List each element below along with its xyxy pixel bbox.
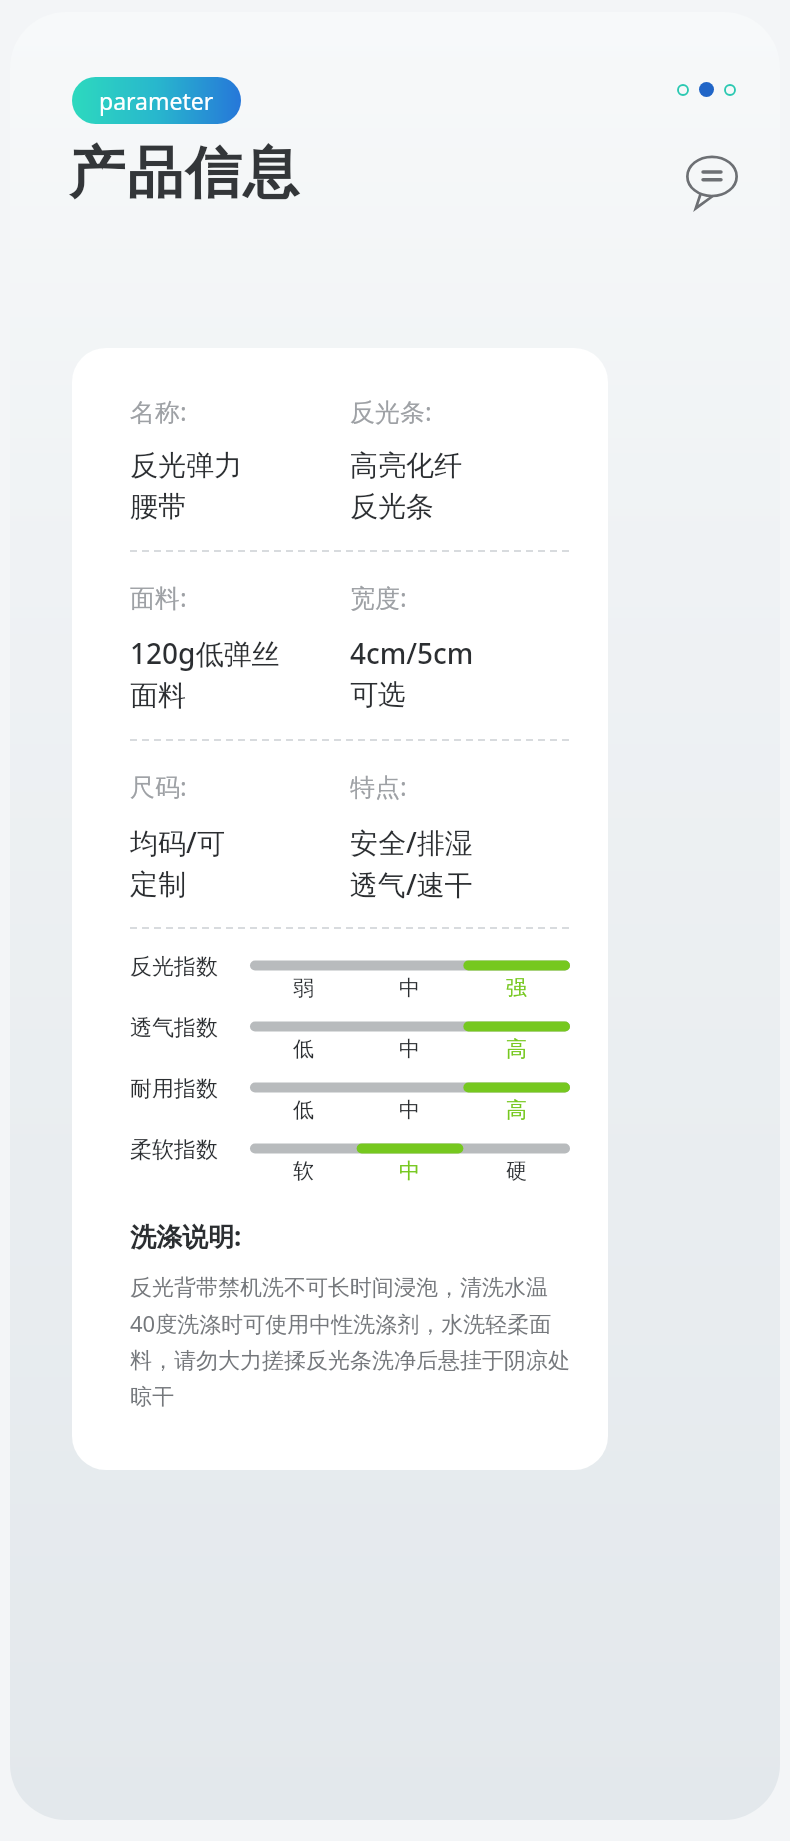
staticText: 120g低弹丝 面料 [130, 634, 280, 713]
staticText: 4cm/5cm 可选 [350, 634, 474, 712]
staticText: 中 [399, 1036, 420, 1062]
staticText: 反光弹力 腰带 [130, 448, 242, 524]
staticText: 尺码: [130, 769, 187, 803]
staticText: 中 [399, 1158, 420, 1184]
staticText: 中 [399, 1097, 420, 1123]
staticText: 耐用指数 [130, 1075, 218, 1103]
button[interactable]: Page indicator [677, 82, 736, 97]
button[interactable]: 反光指数 [130, 953, 570, 1001]
staticText: 高亮化纤 反光条 [350, 448, 462, 524]
staticText: parameter [99, 85, 214, 116]
staticText: 中 [399, 975, 420, 1001]
button[interactable]: 柔软指数 [130, 1136, 570, 1184]
staticText: 透气指数 [130, 1014, 218, 1042]
staticText: 弱 [293, 975, 314, 1001]
staticText: 反光条: [350, 394, 432, 428]
staticText: 安全/排湿 透气/速干 [350, 823, 473, 903]
staticText: 强 [506, 975, 527, 1001]
staticText: 反光背带禁机洗不可长时间浸泡，清洗水温40度洗涤时可使用中性洗涤剂，水洗轻柔面料… [130, 1274, 570, 1410]
button[interactable]: 耐用指数 [130, 1075, 570, 1123]
staticText: 特点: [350, 769, 407, 803]
staticText: 柔软指数 [130, 1136, 218, 1164]
staticText: 名称: [130, 394, 187, 428]
staticText: 硬 [506, 1158, 527, 1184]
button[interactable]: Comments [684, 154, 740, 210]
staticText: 均码/可 定制 [130, 823, 225, 902]
button[interactable]: 透气指数 [130, 1014, 570, 1062]
staticText: 面料: [130, 580, 187, 614]
staticText: 产品信息 [68, 138, 300, 209]
staticText: 软 [293, 1158, 314, 1184]
staticText: 洗涤说明: [130, 1218, 242, 1254]
staticText: 高 [506, 1036, 527, 1062]
staticText: 低 [293, 1036, 314, 1062]
staticText: 反光指数 [130, 953, 218, 981]
button[interactable]: parameter [72, 77, 241, 124]
staticText: 宽度: [350, 580, 407, 614]
staticText: 低 [293, 1097, 314, 1123]
staticText: 高 [506, 1097, 527, 1123]
